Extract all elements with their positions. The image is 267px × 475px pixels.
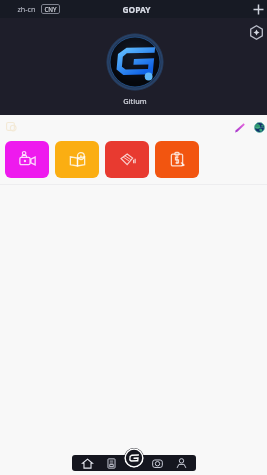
staticText: GOPAY (122, 4, 151, 15)
button[interactable]: Quick action 2 (105, 141, 149, 178)
staticText: zh-cn (17, 4, 36, 14)
button[interactable]: Language (254, 122, 265, 133)
button[interactable]: Quick action 0 (5, 141, 49, 178)
button[interactable]: Scan (148, 455, 166, 471)
staticText: CNY (44, 5, 57, 13)
button[interactable]: Gitium (124, 448, 144, 468)
button[interactable]: CNY (41, 4, 60, 14)
button[interactable]: Messages (5, 121, 18, 134)
button[interactable]: Add (249, 0, 267, 18)
button[interactable]: Profile (172, 455, 190, 471)
button[interactable]: Edit (234, 122, 245, 133)
staticText: Gitium (123, 96, 147, 106)
button[interactable]: Orders (102, 455, 120, 471)
button[interactable]: Settings (247, 23, 265, 41)
button[interactable]: Quick action 3 (155, 141, 199, 178)
button[interactable]: Home (78, 455, 96, 471)
button[interactable]: Quick action 1 (55, 141, 99, 178)
